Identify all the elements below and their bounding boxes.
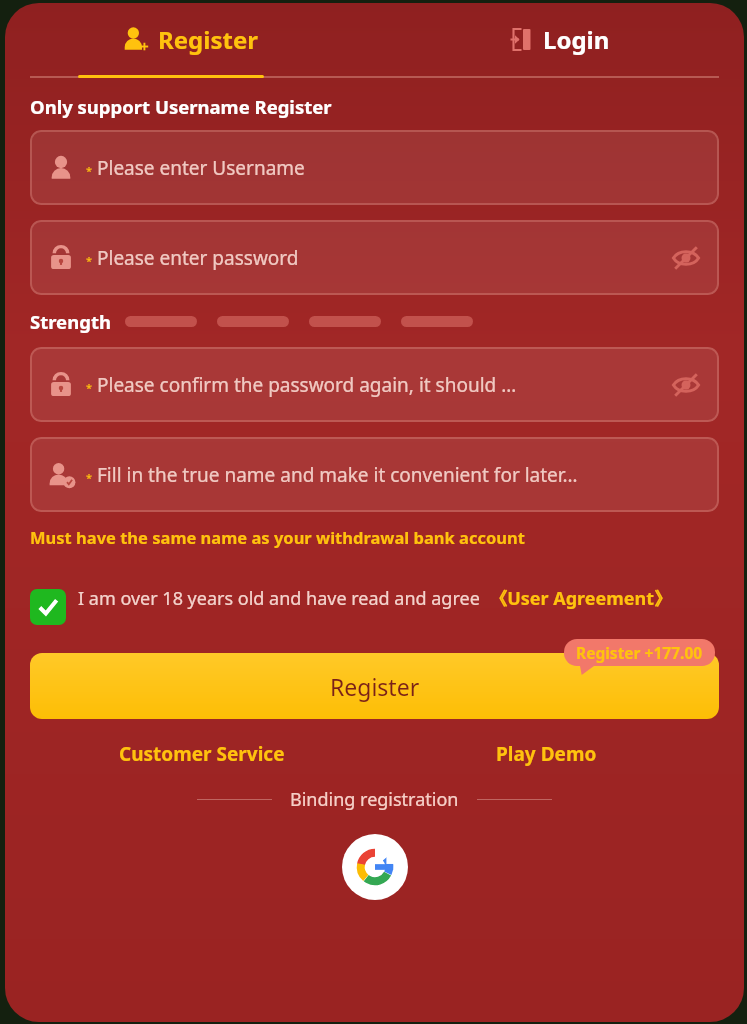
button[interactable]: Register xyxy=(30,653,719,719)
button[interactable]: Register xyxy=(5,3,374,75)
staticText: Login xyxy=(543,23,610,56)
button[interactable]: * Please enter Username xyxy=(30,130,719,205)
staticText: * Please enter password xyxy=(86,245,669,271)
staticText: Only support Username Register xyxy=(30,94,332,119)
staticText: Strength xyxy=(30,309,111,334)
staticText: * Fill in the true name and make it conv… xyxy=(86,462,703,488)
staticText: Register +177.00 xyxy=(576,642,703,663)
button[interactable]: Sign in with Google xyxy=(342,834,408,900)
staticText: Customer Service xyxy=(119,741,285,767)
staticText: * Please enter Username xyxy=(86,155,703,181)
button[interactable]: I am over 18 years old and have read and… xyxy=(30,586,719,625)
staticText: I am over 18 years old and have read and… xyxy=(78,586,719,611)
button[interactable]: * Please enter password xyxy=(30,220,719,295)
button[interactable]: * Fill in the true name and make it conv… xyxy=(30,437,719,512)
button[interactable]: Show password xyxy=(669,241,703,275)
button[interactable]: Customer Service xyxy=(30,741,374,767)
staticText: Play Demo xyxy=(496,741,597,767)
staticText: Register xyxy=(158,23,258,56)
button[interactable]: Login xyxy=(374,3,744,75)
staticText: Register xyxy=(330,671,420,702)
staticText: Must have the same name as your withdraw… xyxy=(30,526,525,548)
button[interactable]: * Please confirm the password again, it … xyxy=(30,347,719,422)
staticText: Binding registration xyxy=(290,787,459,812)
button[interactable]: Show password xyxy=(669,368,703,402)
button[interactable]: Play Demo xyxy=(374,741,719,767)
staticText: * Please confirm the password again, it … xyxy=(86,372,669,398)
